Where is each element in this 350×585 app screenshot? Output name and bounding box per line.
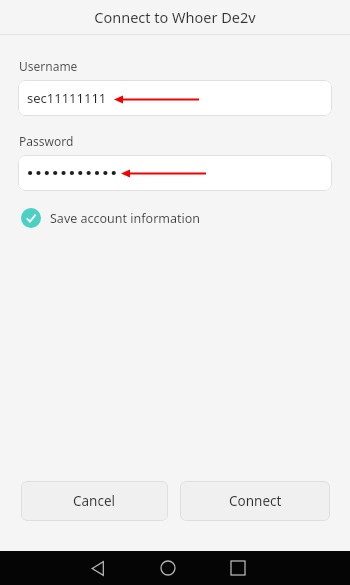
button[interactable]: Back [76,551,120,585]
button[interactable]: sec11111111 [18,80,332,116]
staticText: Save account information [50,210,201,227]
staticText: Username [19,58,78,74]
staticText: Connect to Whoer De2v [94,7,256,27]
button[interactable]: Save account information [20,205,201,231]
button[interactable] [18,155,332,191]
staticText: Cancel [73,492,116,510]
staticText: Password [19,133,74,149]
button[interactable]: Recent apps [216,551,260,585]
button[interactable]: Connect [180,481,330,521]
button[interactable]: Cancel [21,481,168,521]
button[interactable]: Home [146,551,190,585]
staticText: Connect [229,492,282,510]
staticText: sec11111111 [27,89,107,107]
